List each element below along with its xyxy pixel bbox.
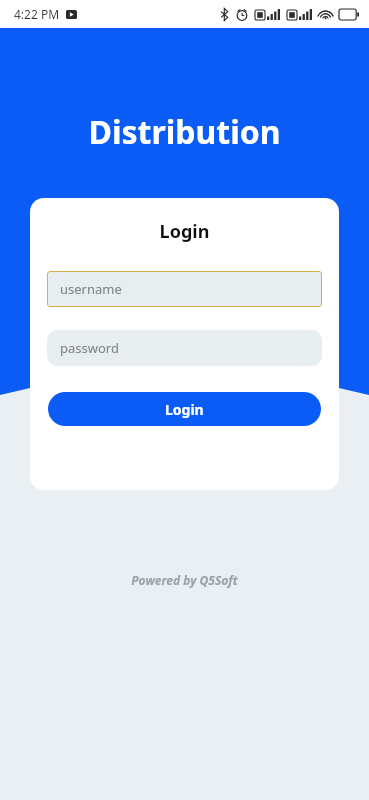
other: Media [66, 10, 77, 19]
staticText: Powered by Q5Soft [0, 572, 369, 588]
staticText: username [60, 280, 122, 298]
button[interactable]: Login [48, 392, 321, 426]
staticText: password [60, 339, 119, 357]
button[interactable]: password [47, 330, 322, 366]
button[interactable]: username [47, 271, 322, 307]
staticText: Distribution [0, 110, 369, 154]
staticText: Login [30, 219, 339, 244]
staticText: 4:22 PM [14, 6, 60, 22]
staticText: Login [165, 400, 204, 419]
